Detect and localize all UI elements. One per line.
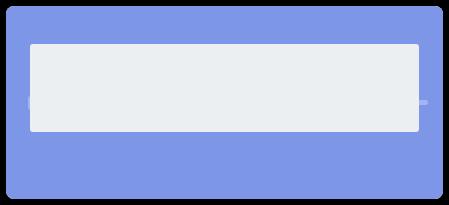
button[interactable]: Home logo	[28, 96, 85, 110]
button[interactable]: Nav item 3	[396, 100, 428, 105]
